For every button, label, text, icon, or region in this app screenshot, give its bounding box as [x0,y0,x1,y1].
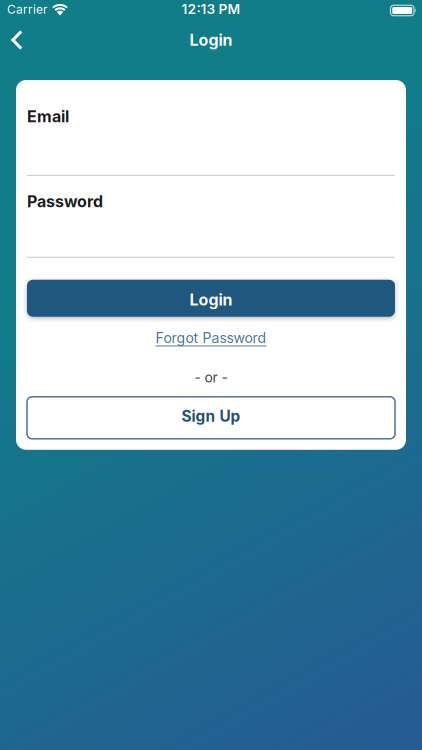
staticText: Login [189,290,232,309]
staticText: Forgot Password [155,330,266,346]
staticText: Login [189,31,232,49]
staticText: Carrier [7,2,48,17]
staticText: Sign Up [181,407,240,425]
button[interactable]: Login [27,280,395,317]
staticText: Password [27,192,103,211]
staticText: 12:13 PM [181,1,240,17]
staticText: - or - [194,369,227,386]
staticText: Email [27,107,69,126]
button[interactable]: Forgot Password [155,330,266,346]
button[interactable]: Sign Up [27,397,395,439]
button[interactable] [0,22,23,58]
